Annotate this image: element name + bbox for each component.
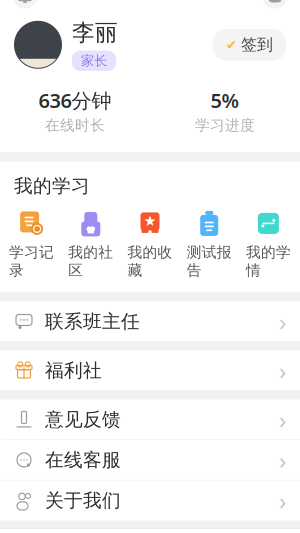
staticText: 学习进度 [195, 116, 255, 134]
staticText: 我的收藏 [127, 243, 172, 279]
staticText: › [279, 354, 286, 386]
staticText: › [279, 403, 286, 435]
button[interactable]: 意见反馈 [0, 399, 300, 439]
button[interactable]: ★ [120, 209, 180, 279]
staticText: 我的学情 [246, 243, 291, 279]
button[interactable]: 福利社 [0, 350, 300, 390]
staticText: 测试报告 [187, 243, 232, 279]
staticText: › [279, 484, 286, 516]
staticText: 家长 [81, 52, 107, 69]
staticText: 我的社区 [68, 243, 113, 279]
button[interactable]: 测试报告 [180, 209, 239, 279]
staticText: 李丽 [72, 19, 118, 46]
staticText: ✔ [226, 37, 237, 52]
staticText: 签到 [241, 35, 273, 55]
staticText: ★ [143, 213, 156, 229]
button[interactable]: 我的学情 [239, 209, 298, 279]
staticText: 福利社 [45, 359, 102, 382]
staticText: 在线时长 [45, 116, 105, 134]
button[interactable]: Settings [258, 0, 292, 13]
staticText: 我的学习 [14, 174, 90, 197]
button[interactable]: 在线客服 [0, 440, 300, 480]
staticText: 636分钟 [38, 87, 111, 113]
staticText: 学习记录 [9, 243, 54, 279]
staticText: › [279, 305, 286, 337]
button[interactable]: 联系班主任 [0, 301, 300, 341]
button[interactable]: 关于我们 [0, 480, 300, 520]
button[interactable]: Notifications [8, 0, 42, 13]
button[interactable]: ✔ [213, 29, 286, 61]
staticText: 联系班主任 [45, 310, 140, 333]
staticText: 5% [210, 87, 239, 113]
staticText: › [279, 444, 286, 476]
button[interactable]: 学习记录 [2, 209, 61, 279]
staticText: 意见反馈 [45, 408, 121, 431]
staticText: 在线客服 [45, 448, 121, 471]
staticText: 关于我们 [45, 489, 121, 512]
button[interactable]: 我的社区 [61, 209, 120, 279]
